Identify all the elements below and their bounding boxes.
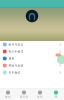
button[interactable]: 微信 [0, 89, 16, 100]
button[interactable]: 通讯录 [16, 89, 32, 100]
staticText: 微信 [5, 95, 11, 98]
staticText: 我 [54, 95, 57, 98]
staticText: 发现 [37, 95, 43, 98]
staticText: 关于微信 [8, 71, 20, 74]
button[interactable]: 关于微信 [0, 69, 64, 76]
staticText: 通讯录 [19, 95, 28, 98]
button[interactable]: 帮助与反馈 [0, 62, 64, 69]
staticText: 账号与安全 [8, 43, 23, 46]
button[interactable]: 我 [48, 89, 64, 100]
staticText: 通用 [8, 57, 14, 60]
button[interactable]: Profile photo [26, 10, 38, 22]
button[interactable]: 青少年模式 [0, 48, 64, 55]
staticText: 青少年模式 [8, 50, 23, 53]
staticText: 帮助与反馈 [8, 64, 23, 67]
button[interactable]: 通用 [0, 55, 64, 62]
button[interactable]: 发现 [32, 89, 48, 100]
button[interactable]: 账号与安全 [0, 41, 64, 48]
